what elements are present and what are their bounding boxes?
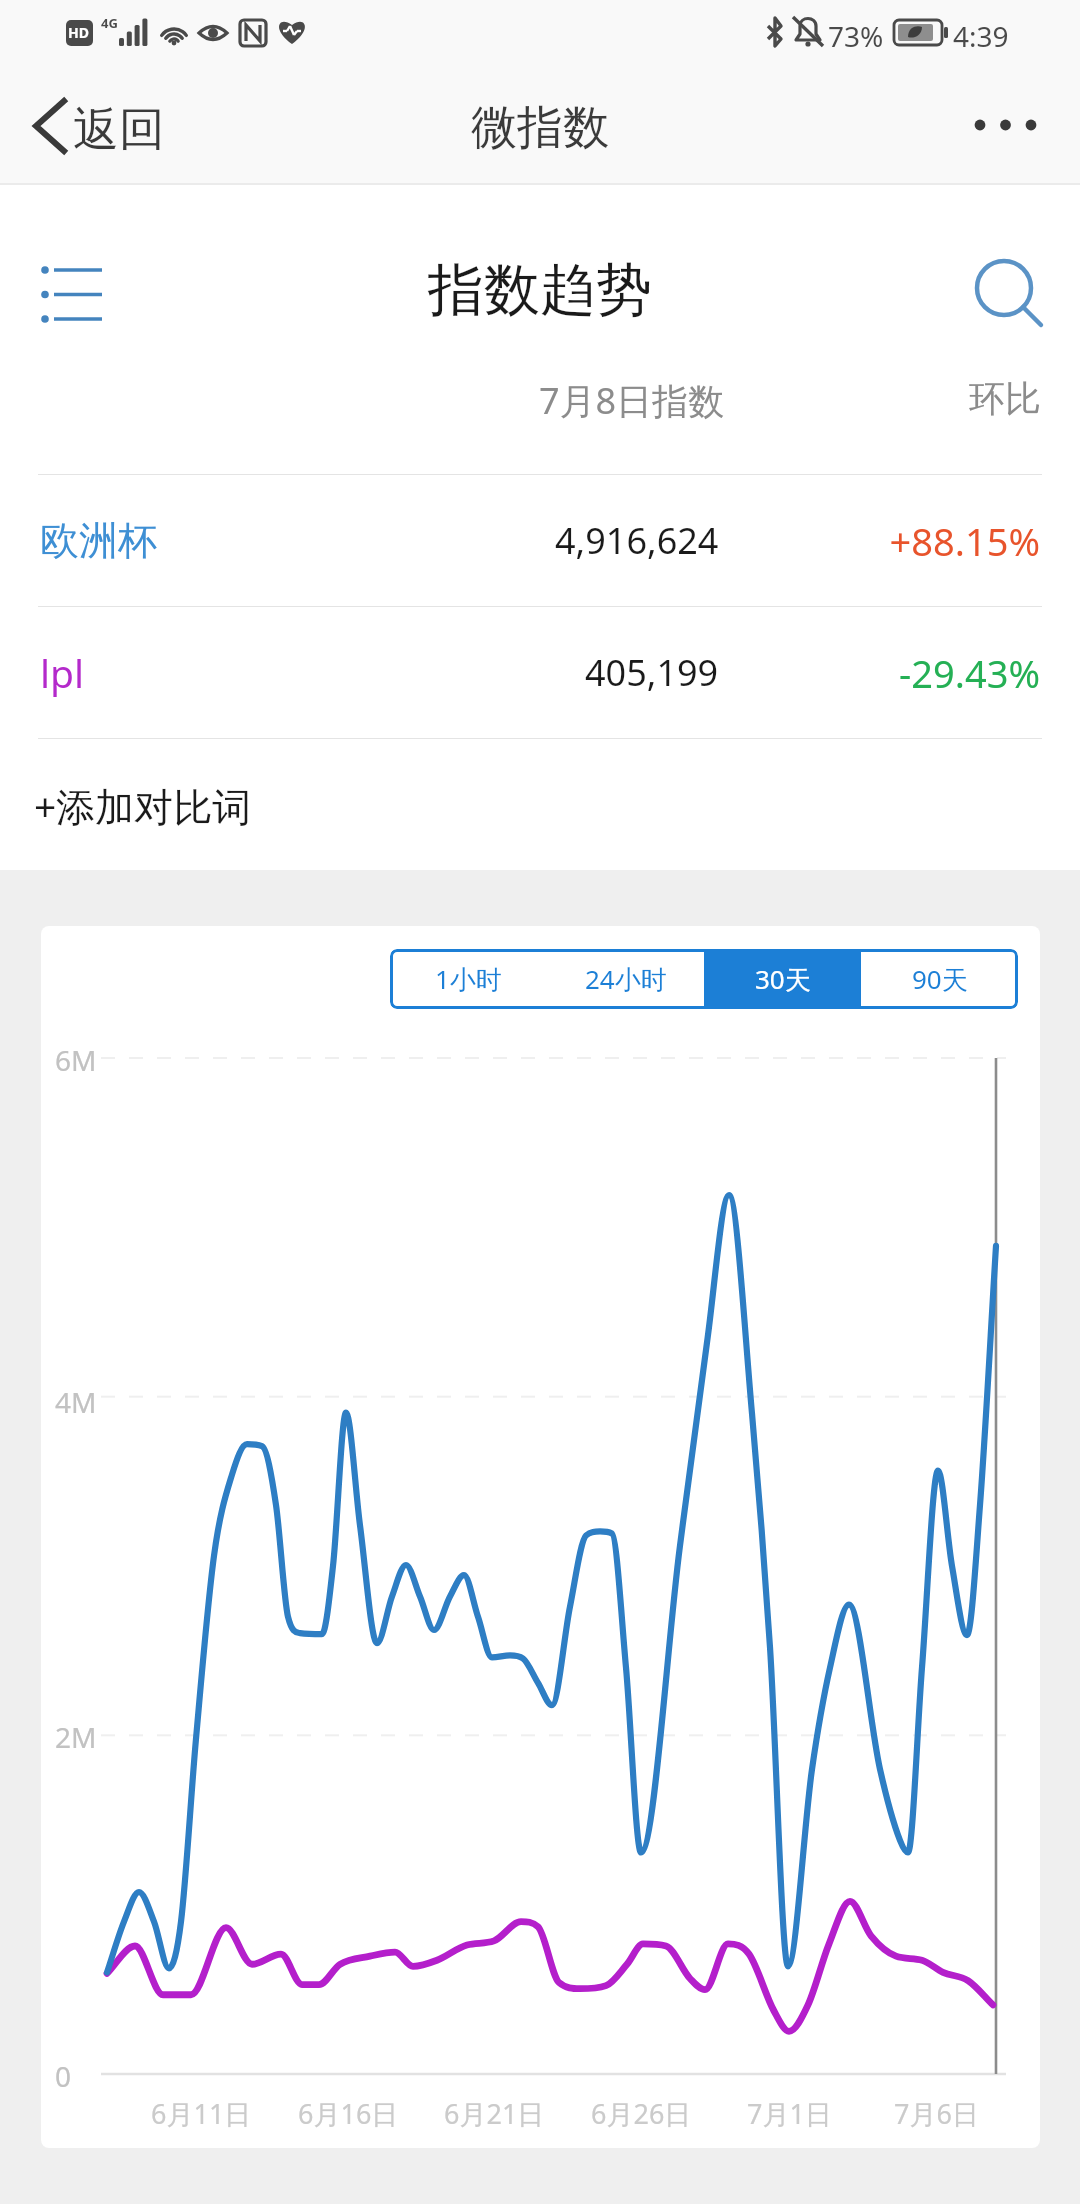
staticText: 环比 [969, 376, 1041, 421]
staticText: 90天 [912, 961, 968, 997]
button[interactable]: lpl [0, 607, 1080, 738]
staticText: 4:39 [953, 17, 1009, 55]
staticText: +88.15% [889, 515, 1040, 567]
staticText: 30天 [755, 961, 811, 997]
button[interactable]: More options [952, 72, 1064, 185]
staticText: 6M [55, 1041, 97, 1079]
staticText: 欧洲杯 [40, 516, 157, 565]
staticText: 7月8日指数 [539, 376, 725, 425]
button[interactable]: 30天 [704, 949, 861, 1009]
button[interactable]: 24小时 [547, 949, 704, 1009]
button[interactable]: List view [16, 245, 120, 327]
staticText: 73% [828, 17, 884, 55]
staticText: 1小时 [435, 961, 502, 997]
staticText: 4M [55, 1383, 97, 1421]
staticText: 24小时 [585, 961, 667, 997]
staticText: 4,916,624 [555, 516, 719, 565]
button[interactable]: 90天 [861, 949, 1018, 1009]
staticText: 返回 [73, 101, 165, 159]
staticText: 6月16日 [298, 2095, 399, 2132]
button[interactable]: 1小时 [390, 949, 547, 1009]
button[interactable]: Search [962, 240, 1058, 336]
staticText: 4G [101, 14, 118, 32]
staticText: 6月26日 [591, 2095, 692, 2132]
staticText: 0 [55, 2057, 72, 2095]
staticText: 405,199 [585, 648, 719, 697]
staticText: 微指数 [471, 99, 609, 157]
button[interactable]: 欧洲杯 [0, 475, 1080, 606]
staticText: -29.43% [899, 647, 1040, 699]
staticText: HD [68, 23, 89, 42]
button[interactable]: Back [20, 72, 180, 185]
staticText: +添加对比词 [34, 779, 252, 832]
staticText: lpl [40, 646, 85, 699]
staticText: 6月11日 [151, 2095, 252, 2132]
staticText: 2M [55, 1718, 97, 1756]
staticText: 7月6日 [894, 2095, 979, 2132]
staticText: 指数趋势 [428, 255, 652, 326]
staticText: 7月1日 [747, 2095, 832, 2132]
button[interactable]: +添加对比词 [0, 739, 1080, 872]
staticText: 6月21日 [444, 2095, 545, 2132]
